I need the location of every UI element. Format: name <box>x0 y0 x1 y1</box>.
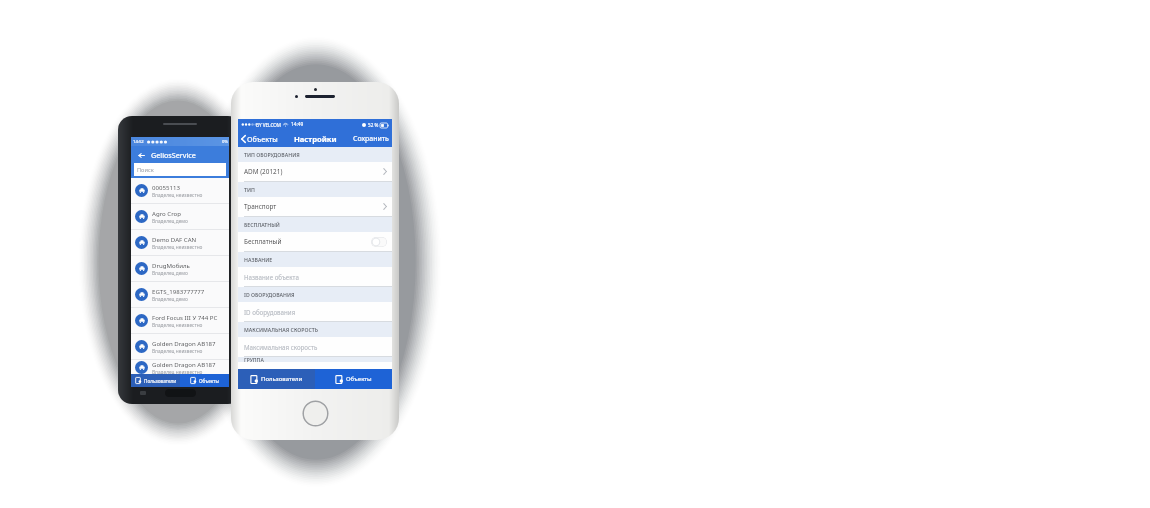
staticText: Demo DAF CAN <box>152 235 197 243</box>
staticText: 0% <box>222 139 228 145</box>
staticText: Объекты <box>346 375 372 383</box>
button[interactable]: EGTS_1983777777 <box>131 282 229 307</box>
staticText: GeliosService <box>151 150 196 160</box>
staticText: Agro Crop <box>152 209 181 217</box>
staticText: НАЗВАНИЕ <box>244 256 273 263</box>
staticText: Название объекта <box>244 273 299 281</box>
staticText: Объекты <box>247 134 278 144</box>
button[interactable]: Объекты <box>315 369 392 389</box>
staticText: Владелец неизвестно <box>152 322 203 329</box>
staticText: ADM (20121) <box>244 167 383 176</box>
button[interactable]: Ford Focus III У 744 РС 77 <box>131 308 229 333</box>
staticText: 00055113 <box>152 183 180 191</box>
staticText: Владелец неизвестно <box>152 369 203 374</box>
staticText: Владелец неизвестно <box>152 244 203 251</box>
staticText: Объекты <box>199 378 220 384</box>
button[interactable]: Agro Crop <box>131 204 229 229</box>
staticText: Владелец демо <box>152 296 188 303</box>
button[interactable]: Пользователи <box>238 369 315 389</box>
staticText: Настройки <box>294 134 337 144</box>
staticText: Golden Dragon AB187 <box>152 339 216 347</box>
staticText: Владелец демо <box>152 270 188 277</box>
staticText: Golden Dragon AB187 <box>152 360 216 368</box>
button[interactable]: ADM (20121) <box>238 162 392 181</box>
staticText: МАКСИМАЛЬНАЯ СКОРОСТЬ <box>244 326 319 333</box>
staticText: BY VELCOM <box>256 122 281 128</box>
button[interactable]: Поиск <box>134 163 226 176</box>
staticText: 52 % <box>368 122 379 128</box>
staticText: Бесплатный <box>244 237 371 246</box>
button[interactable]: Сохранить <box>350 132 392 146</box>
button[interactable]: Объекты <box>238 132 282 146</box>
button[interactable]: Home <box>302 400 329 427</box>
staticText: ГРУППА <box>244 357 264 362</box>
button[interactable]: Back <box>136 150 146 160</box>
staticText: Ford Focus III У 744 РС 77 <box>152 313 225 321</box>
staticText: EGTS_1983777777 <box>152 287 205 295</box>
staticText: Сохранить <box>353 134 389 144</box>
staticText: ID оборудования <box>244 308 296 316</box>
button[interactable]: Golden Dragon AB187 <box>131 360 229 374</box>
staticText: Владелец неизвестно <box>152 348 203 355</box>
button[interactable]: Бесплатный toggle <box>371 237 387 247</box>
staticText: Пользователи <box>261 375 303 383</box>
staticText: Максимальная скорость <box>244 343 318 351</box>
staticText: ТИП ОБОРУДОВАНИЯ <box>244 151 300 158</box>
button[interactable]: Название объекта <box>238 267 392 286</box>
staticText: Пользователи <box>144 378 177 384</box>
button[interactable]: Объекты <box>180 374 229 387</box>
staticText: ID ОБОРУДОВАНИЯ <box>244 291 295 298</box>
staticText: 14:49 <box>291 121 304 128</box>
staticText: 14:52 <box>133 139 144 145</box>
button[interactable]: Транспорт <box>238 197 392 216</box>
button[interactable]: Пользователи <box>131 374 180 387</box>
button[interactable]: Demo DAF CAN <box>131 230 229 255</box>
staticText: БЕСПЛАТНЫЙ <box>244 221 280 228</box>
staticText: Транспорт <box>244 202 383 211</box>
staticText: ТИП <box>244 186 255 193</box>
staticText: Владелец демо <box>152 218 188 225</box>
staticText: Владелец неизвестно <box>152 192 203 199</box>
button[interactable]: Максимальная скорость <box>238 337 392 356</box>
button[interactable]: Бесплатный <box>238 232 392 251</box>
staticText: Поиск <box>137 166 154 174</box>
button[interactable]: Golden Dragon AB187 <box>131 334 229 359</box>
button[interactable]: ID оборудования <box>238 302 392 321</box>
staticText: DrugМобиль <box>152 261 190 269</box>
button[interactable]: 00055113 <box>131 178 229 203</box>
button[interactable]: DrugМобиль <box>131 256 229 281</box>
